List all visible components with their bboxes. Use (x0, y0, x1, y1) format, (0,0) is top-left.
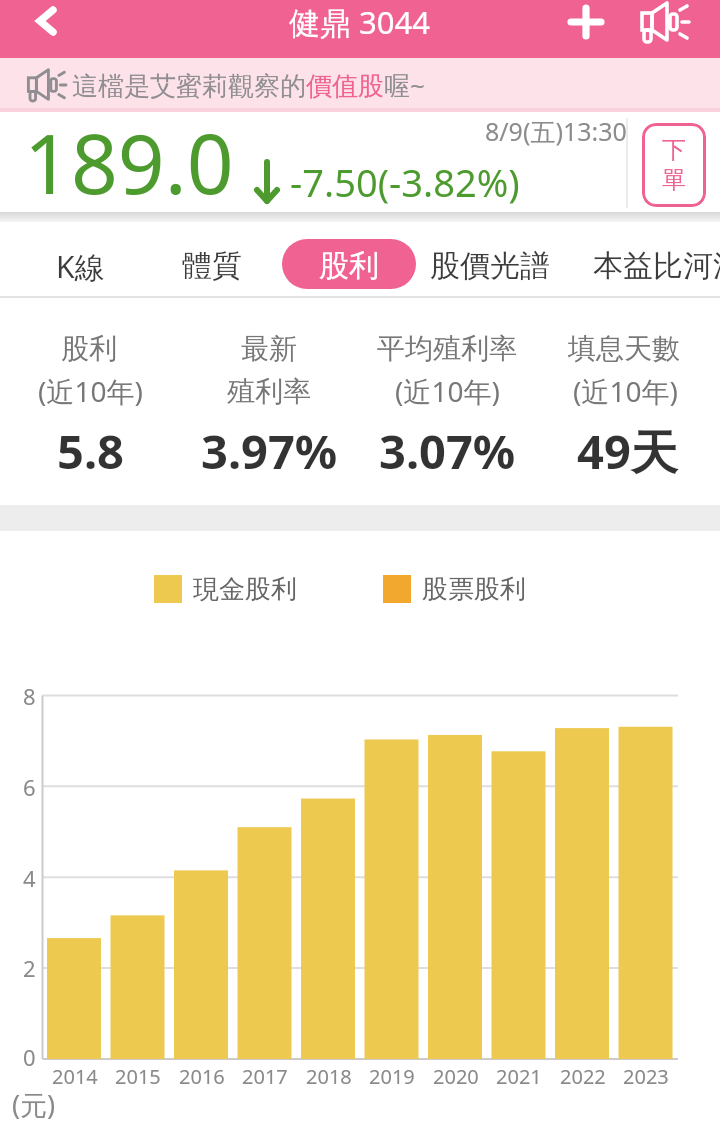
staticText: 2017 (242, 1063, 288, 1090)
staticText: 2 (23, 953, 36, 983)
button[interactable] (150, 230, 274, 288)
staticText: K線 (56, 246, 105, 287)
staticText: 2023 (623, 1063, 669, 1090)
staticText: (近10年) (395, 372, 500, 410)
staticText: 2016 (179, 1063, 225, 1090)
staticText: 3.07% (379, 419, 516, 483)
staticText: 最新 (241, 331, 297, 366)
staticText: 3.97% (201, 419, 338, 483)
button[interactable] (24, 2, 70, 42)
staticText: 49天 (577, 419, 678, 483)
staticText: 體質 (182, 247, 242, 285)
staticText: 4 (23, 863, 36, 893)
staticText: 2019 (369, 1063, 415, 1090)
staticText: 8 (23, 681, 36, 711)
staticText: 健鼎 3044 (289, 1, 430, 43)
button[interactable] (20, 230, 144, 288)
staticText: 這檔是艾蜜莉觀察的價值股喔~ (72, 67, 425, 103)
staticText: 現金股利 (193, 573, 297, 606)
staticText: 單 (662, 165, 686, 195)
staticText: 下 (662, 135, 686, 165)
staticText: 本益比河流圖 (593, 247, 720, 285)
staticText: 股利 (319, 247, 379, 285)
staticText: 5.8 (57, 419, 124, 483)
staticText: 2018 (306, 1063, 352, 1090)
staticText: 0 (23, 1042, 36, 1072)
staticText: 2015 (115, 1063, 161, 1090)
button[interactable] (0, 58, 720, 112)
staticText: 股價光譜 (430, 247, 550, 285)
button[interactable] (562, 0, 610, 44)
staticText: 189.0 (24, 106, 234, 196)
staticText: 股利 (61, 331, 117, 366)
staticText: 2021 (496, 1063, 542, 1090)
button[interactable]: 股利 (282, 239, 416, 289)
staticText: (元) (12, 1086, 56, 1123)
staticText: 8/9(五)13:30 (485, 114, 627, 148)
staticText: 2022 (560, 1063, 606, 1090)
staticText: -7.50(-3.82%) (290, 156, 520, 208)
staticText: 股票股利 (422, 573, 526, 606)
staticText: 2020 (433, 1063, 479, 1090)
staticText: (近10年) (573, 372, 678, 410)
staticText: (近10年) (38, 372, 143, 410)
staticText: 殖利率 (227, 374, 311, 409)
staticText: 2014 (52, 1063, 98, 1090)
button[interactable]: 下 (642, 123, 706, 207)
button[interactable] (635, 0, 691, 46)
button[interactable] (585, 230, 720, 288)
staticText: 平均殖利率 (377, 331, 517, 366)
button[interactable] (428, 230, 552, 288)
staticText: 填息天數 (568, 331, 680, 366)
staticText: 6 (23, 772, 36, 802)
